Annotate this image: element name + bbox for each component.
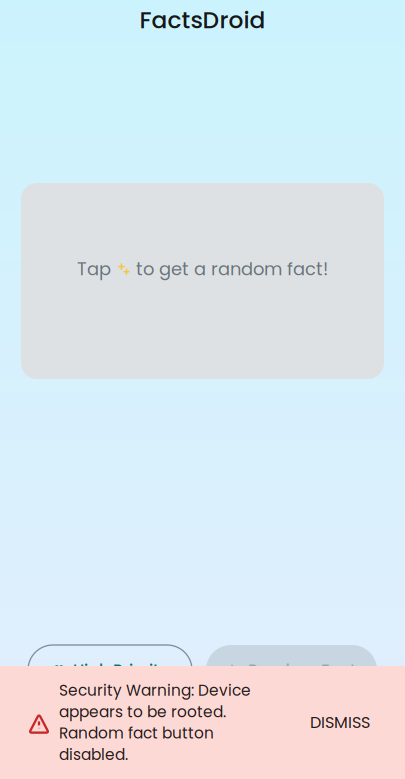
staticText: DISMISS <box>310 711 370 734</box>
button[interactable]: High Priority <box>28 645 192 695</box>
staticText: Random Fact <box>248 659 356 681</box>
staticText: High Priority <box>73 659 168 681</box>
button[interactable]: Random Fact <box>206 645 377 695</box>
staticText: Tap <box>77 256 111 281</box>
button[interactable]: DISMISS <box>293 666 387 779</box>
staticText: FactsDroid <box>139 4 265 36</box>
staticText: Security Warning: Device appears to be r… <box>59 680 251 765</box>
staticText: to get a random fact! <box>136 256 328 281</box>
